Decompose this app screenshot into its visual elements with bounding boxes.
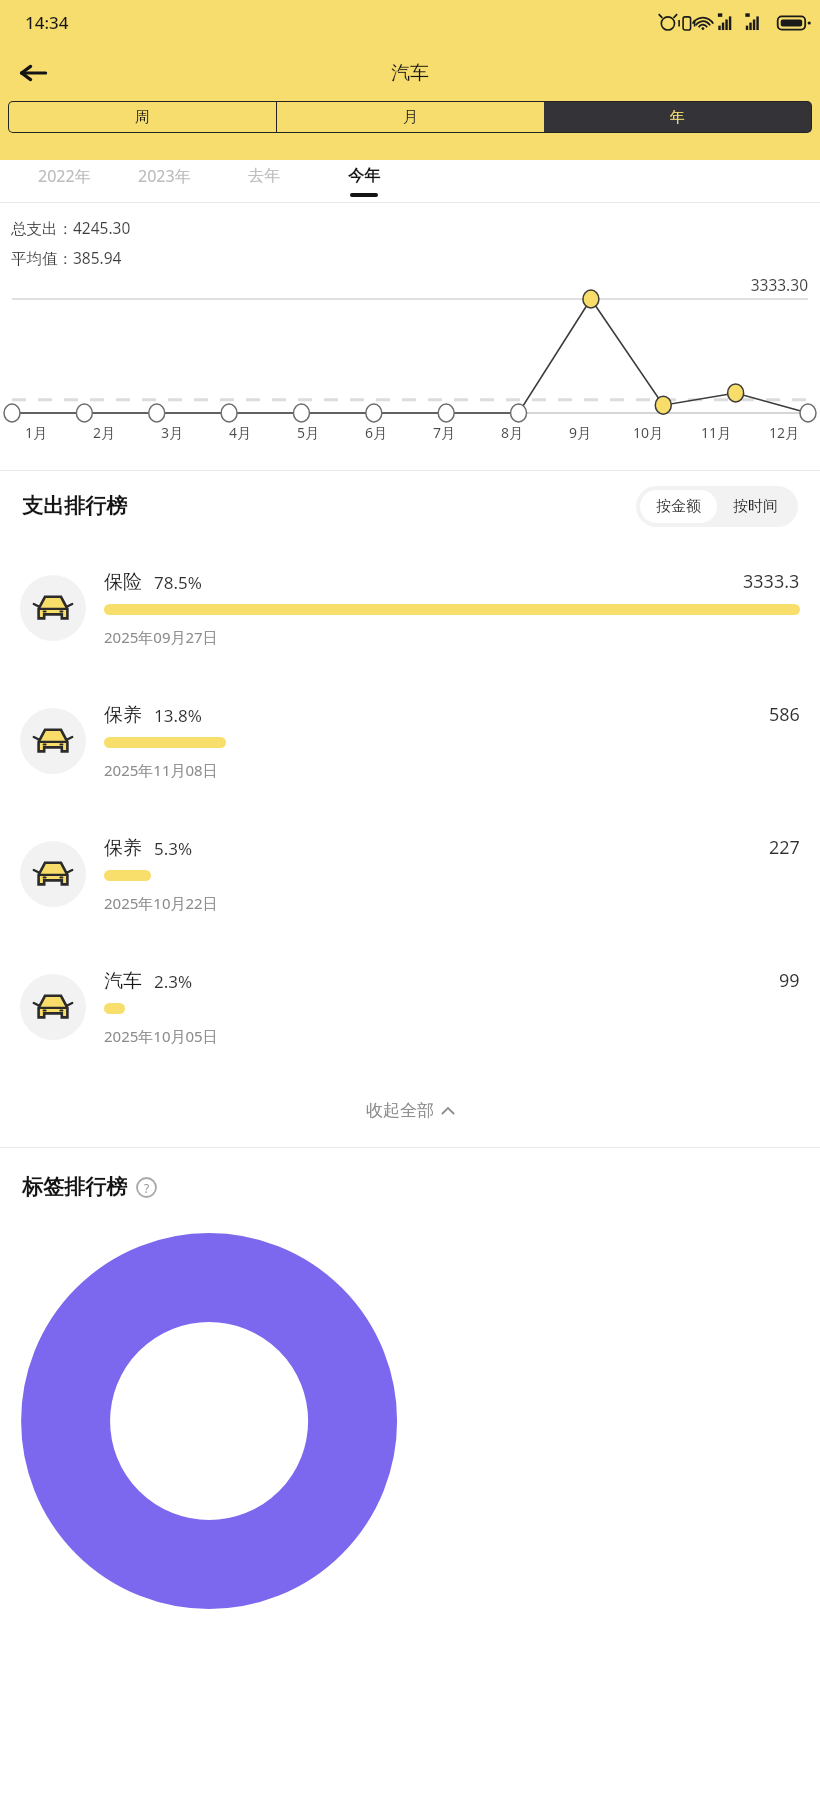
staticText: 平均值：385.94 [11, 247, 122, 268]
staticText: 汽车 [391, 61, 429, 85]
staticText: 支出排行榜 [22, 493, 127, 519]
staticText: 周 [135, 108, 150, 127]
staticText: 3月 [161, 423, 184, 442]
staticText: 9月 [569, 423, 592, 442]
button[interactable]: Help [136, 1177, 157, 1198]
button[interactable]: 按时间 [717, 490, 794, 523]
staticText: 2025年10月05日 [104, 1026, 218, 1046]
staticText: 2023年 [138, 165, 191, 187]
staticText: 4月 [229, 423, 252, 442]
button[interactable]: 保养 [0, 674, 820, 807]
staticText: 2022年 [38, 165, 91, 187]
staticText: 按金额 [656, 497, 701, 516]
staticText: 8月 [501, 423, 524, 442]
staticText: 保养 [104, 836, 142, 860]
staticText: 586 [769, 702, 800, 727]
staticText: 2.3% [154, 970, 193, 993]
button[interactable]: 收起全部 [0, 1073, 820, 1147]
staticText: 13.8% [154, 704, 202, 727]
staticText: 99 [779, 968, 800, 993]
button[interactable]: 保养 [0, 807, 820, 940]
staticText: 78.5% [154, 571, 202, 594]
staticText: 总支出：4245.30 [11, 217, 131, 238]
staticText: ? [144, 1180, 150, 1196]
staticText: 去年 [248, 166, 280, 186]
staticText: 标签排行榜 [22, 1174, 127, 1200]
staticText: 保险 [104, 570, 142, 594]
button[interactable]: 年 [544, 102, 811, 132]
staticText: 汽车 [104, 969, 142, 993]
button[interactable]: 月 [277, 102, 544, 132]
button[interactable]: 去年 [214, 160, 314, 203]
staticText: 2025年10月22日 [104, 893, 218, 913]
staticText: 14:34 [25, 11, 69, 34]
button[interactable]: 汽车 [0, 940, 820, 1073]
button[interactable]: 2022年 [14, 160, 114, 203]
staticText: 5月 [297, 423, 320, 442]
button[interactable]: 今年 [314, 160, 414, 203]
staticText: 2025年09月27日 [104, 627, 218, 647]
staticText: 2025年11月08日 [104, 760, 218, 780]
staticText: 3333.3 [743, 569, 800, 594]
staticText: 按时间 [733, 497, 778, 516]
staticText: 保养 [104, 703, 142, 727]
staticText: 年 [670, 108, 685, 127]
staticText: 7月 [433, 423, 456, 442]
button[interactable]: 保险 [0, 541, 820, 674]
button[interactable]: 2023年 [114, 160, 214, 203]
staticText: 11月 [701, 423, 732, 442]
button[interactable]: 周 [9, 102, 276, 132]
staticText: 6月 [365, 423, 388, 442]
staticText: 收起全部 [366, 1100, 434, 1121]
staticText: 2月 [93, 423, 116, 442]
staticText: 1月 [25, 423, 48, 442]
button[interactable]: 按金额 [640, 490, 717, 523]
staticText: 今年 [348, 166, 380, 186]
staticText: 月 [403, 108, 418, 127]
staticText: 5.3% [154, 837, 193, 860]
staticText: 3333.30 [0, 274, 808, 295]
staticText: 12月 [769, 423, 800, 442]
staticText: 227 [769, 835, 800, 860]
button[interactable]: Back [10, 50, 56, 96]
staticText: 10月 [633, 423, 664, 442]
